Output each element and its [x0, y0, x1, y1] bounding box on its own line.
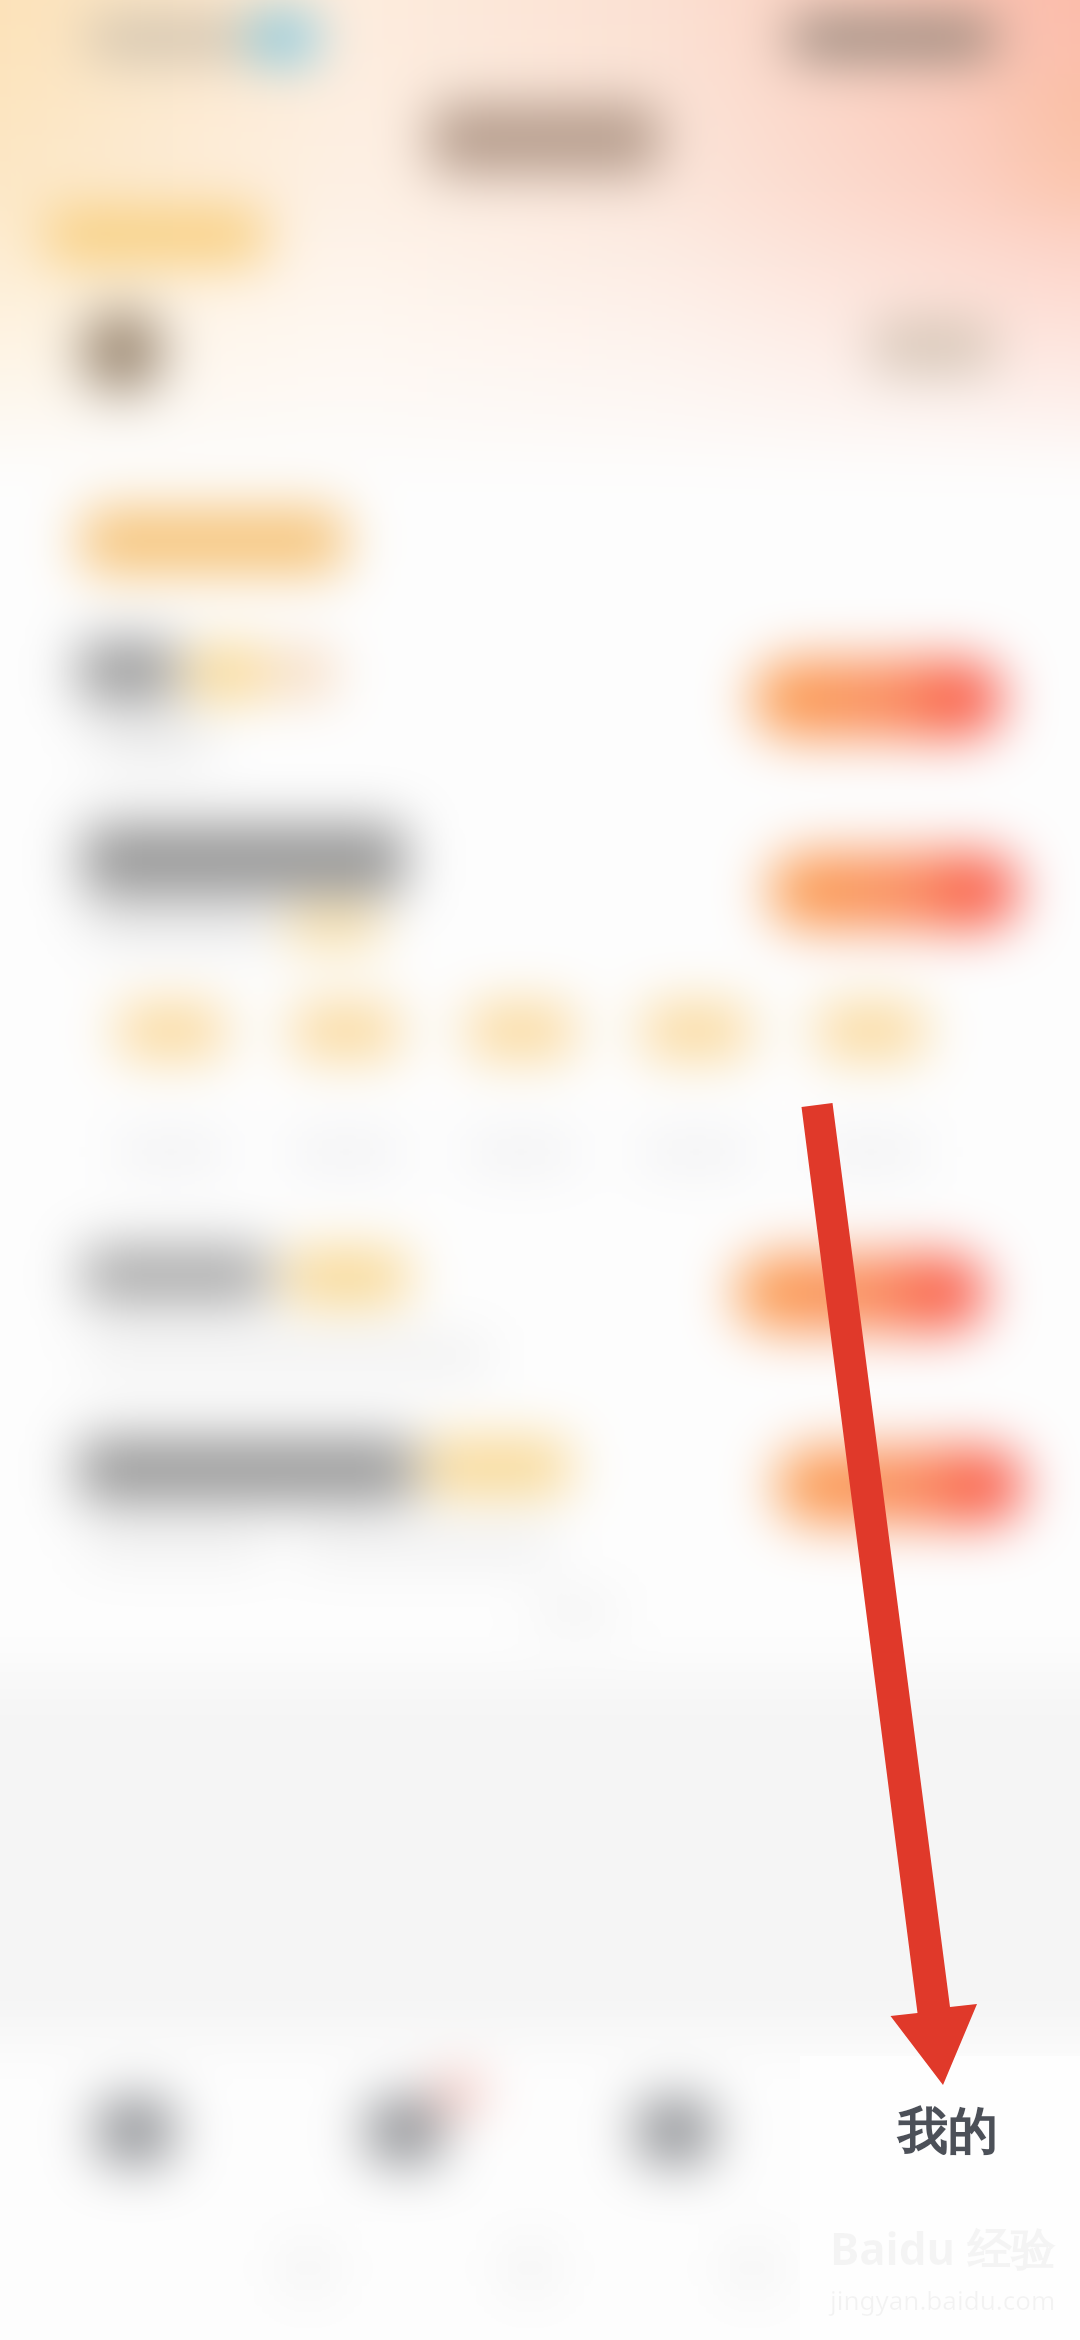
button[interactable]: List item 1 [0, 600, 1080, 780]
button[interactable]: Category [811, 990, 931, 1170]
button[interactable]: List item 3 [0, 1200, 1080, 1390]
staticText: 我的 [897, 2101, 997, 2164]
button[interactable]: Back [20, 88, 130, 198]
button[interactable]: More options [950, 88, 1060, 198]
button[interactable]: List item 2 [0, 790, 1080, 970]
button[interactable]: Category [636, 990, 756, 1170]
staticText: Baidu 经验 [830, 2218, 1055, 2278]
button[interactable]: Action [775, 1448, 1023, 1524]
button[interactable]: Category [286, 990, 406, 1170]
button[interactable]: Action [752, 660, 1002, 738]
button[interactable]: List item 4 [0, 1400, 1080, 1590]
button[interactable]: Tab 2 [315, 2066, 495, 2206]
button[interactable]: Tab 3 [585, 2066, 765, 2206]
button[interactable]: Tab 4 [855, 2066, 1035, 2206]
button[interactable]: Tab 1 [45, 2066, 225, 2206]
button[interactable]: Action [768, 853, 1018, 929]
button[interactable]: Action [735, 1255, 985, 1331]
staticText: jingyan.baidu.com [830, 2282, 1056, 2317]
button[interactable]: Category [111, 990, 231, 1170]
button[interactable]: Category [461, 990, 581, 1170]
button[interactable]: Profile avatar [80, 310, 164, 394]
